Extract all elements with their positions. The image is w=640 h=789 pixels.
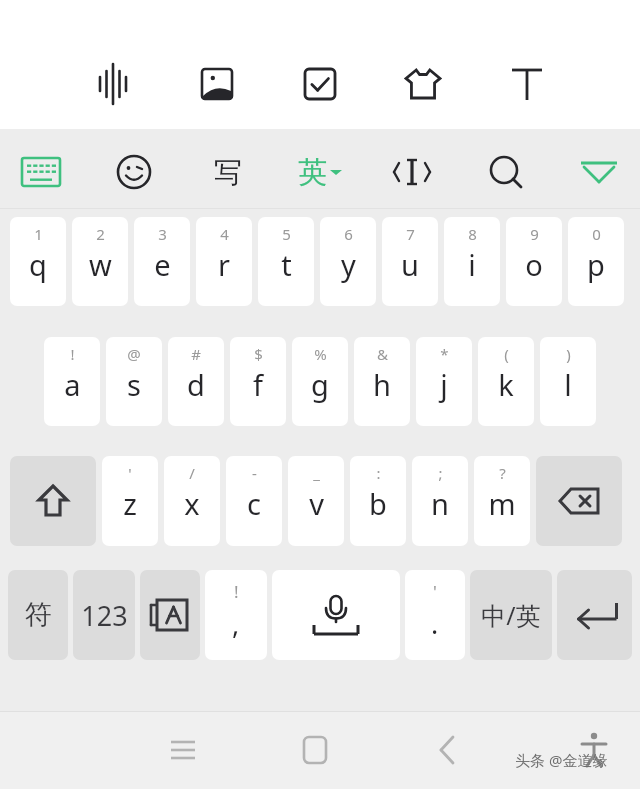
staticText: 写: [214, 155, 242, 190]
staticText: k: [498, 365, 514, 404]
staticText: %: [314, 344, 327, 364]
button[interactable]: Theme: [396, 57, 450, 111]
button[interactable]: 4: [196, 217, 252, 306]
button[interactable]: Backspace: [536, 456, 622, 546]
button[interactable]: ': [102, 456, 158, 546]
button[interactable]: 1: [10, 217, 66, 306]
staticText: @: [127, 344, 141, 364]
staticText: 5: [282, 224, 291, 244]
staticText: p: [587, 245, 605, 284]
staticText: ': [433, 580, 437, 603]
staticText: 英: [298, 154, 327, 191]
button[interactable]: Hide keyboard: [576, 149, 622, 195]
button[interactable]: #: [168, 337, 224, 426]
staticText: 1: [34, 224, 43, 244]
staticText: 4: [220, 224, 229, 244]
staticText: o: [525, 245, 543, 284]
staticText: x: [184, 484, 200, 523]
staticText: ?: [499, 463, 506, 483]
button[interactable]: Image: [190, 57, 244, 111]
staticText: &: [377, 344, 388, 364]
staticText: q: [29, 245, 47, 284]
button[interactable]: $: [230, 337, 286, 426]
staticText: 7: [406, 224, 415, 244]
button[interactable]: 中/英: [470, 570, 552, 660]
staticText: e: [154, 245, 171, 284]
button[interactable]: Enter: [557, 570, 632, 660]
staticText: f: [253, 365, 263, 404]
button[interactable]: 7: [382, 217, 438, 306]
button[interactable]: 符: [8, 570, 68, 660]
button[interactable]: (: [478, 337, 534, 426]
staticText: #: [191, 344, 201, 364]
button[interactable]: Tasks: [293, 57, 347, 111]
button[interactable]: 9: [506, 217, 562, 306]
button[interactable]: %: [292, 337, 348, 426]
button[interactable]: ;: [412, 456, 468, 546]
button[interactable]: Home: [287, 722, 343, 778]
staticText: 符: [25, 598, 52, 632]
staticText: 3: [158, 224, 167, 244]
staticText: !: [234, 580, 239, 603]
staticText: 123: [81, 597, 128, 634]
button[interactable]: *: [416, 337, 472, 426]
staticText: c: [247, 484, 261, 523]
button[interactable]: Emoji: [111, 149, 157, 195]
staticText: h: [373, 365, 391, 404]
staticText: z: [123, 484, 137, 523]
button[interactable]: 写: [205, 149, 251, 195]
button[interactable]: ?: [474, 456, 530, 546]
button[interactable]: /: [164, 456, 220, 546]
button[interactable]: !: [44, 337, 100, 426]
staticText: m: [488, 484, 516, 523]
staticText: g: [311, 365, 329, 404]
button[interactable]: Accessibility: [566, 722, 622, 778]
button[interactable]: :: [350, 456, 406, 546]
staticText: *: [440, 344, 449, 364]
staticText: s: [127, 365, 141, 404]
staticText: !: [70, 344, 75, 364]
button[interactable]: _: [288, 456, 344, 546]
staticText: (: [504, 344, 509, 364]
staticText: ): [566, 344, 571, 364]
staticText: d: [187, 365, 205, 404]
button[interactable]: Cursor: [389, 149, 435, 195]
staticText: i: [468, 245, 476, 284]
button[interactable]: &: [354, 337, 410, 426]
button[interactable]: Back: [419, 722, 475, 778]
button[interactable]: Keyboard: [18, 149, 64, 195]
button[interactable]: 6: [320, 217, 376, 306]
button[interactable]: 5: [258, 217, 314, 306]
staticText: 9: [530, 224, 539, 244]
button[interactable]: Text: [500, 57, 554, 111]
button[interactable]: Space: [272, 570, 400, 660]
button[interactable]: 2: [72, 217, 128, 306]
button[interactable]: 0: [568, 217, 624, 306]
button[interactable]: ': [405, 570, 465, 660]
staticText: ,: [232, 605, 240, 642]
button[interactable]: 123: [73, 570, 135, 660]
staticText: _: [313, 463, 320, 483]
button[interactable]: Voice: [86, 57, 140, 111]
button[interactable]: Search: [483, 149, 529, 195]
button[interactable]: 3: [134, 217, 190, 306]
staticText: -: [252, 463, 257, 483]
staticText: /: [189, 463, 195, 483]
staticText: l: [564, 365, 572, 404]
button[interactable]: Shift: [10, 456, 96, 546]
staticText: .: [431, 605, 439, 642]
staticText: n: [431, 484, 449, 523]
button[interactable]: 8: [444, 217, 500, 306]
staticText: t: [281, 245, 292, 284]
staticText: 6: [344, 224, 353, 244]
button[interactable]: Recent apps: [155, 722, 211, 778]
button[interactable]: @: [106, 337, 162, 426]
staticText: 0: [592, 224, 601, 244]
button[interactable]: 英: [298, 149, 342, 195]
staticText: 中/英: [481, 598, 541, 632]
button[interactable]: ): [540, 337, 596, 426]
button[interactable]: !: [205, 570, 267, 660]
button[interactable]: -: [226, 456, 282, 546]
staticText: u: [401, 245, 419, 284]
button[interactable]: Language: [140, 570, 200, 660]
